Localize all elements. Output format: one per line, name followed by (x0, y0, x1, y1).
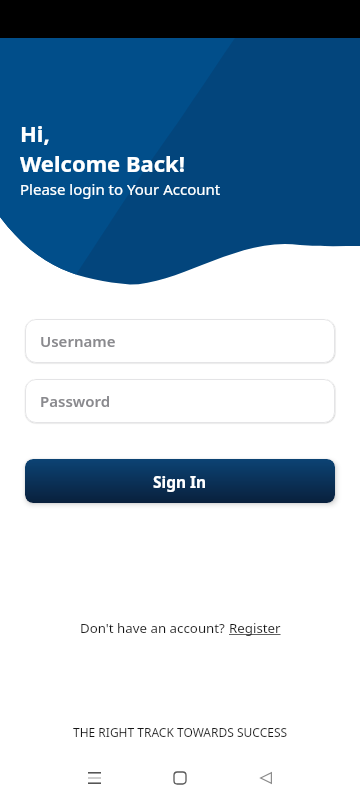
button[interactable]: Sign In (25, 459, 335, 503)
staticText: Password (40, 391, 111, 411)
button[interactable]: Password (25, 379, 335, 423)
staticText: Don't have an account? (80, 619, 229, 637)
staticText: THE RIGHT TRACK TOWARDS SUCCESS (73, 724, 288, 740)
button[interactable]: Recent apps (70, 754, 118, 800)
button[interactable]: Register (229, 619, 281, 637)
staticText: Hi, (20, 118, 50, 148)
staticText: Welcome Back! (20, 148, 185, 178)
staticText: Please login to Your Account (20, 179, 221, 199)
button[interactable]: Username (25, 319, 335, 363)
button[interactable]: Home (156, 754, 204, 800)
staticText: Username (40, 331, 116, 351)
staticText: Sign In (153, 471, 207, 492)
button[interactable]: Back (242, 754, 290, 800)
staticText: Register (229, 619, 281, 637)
